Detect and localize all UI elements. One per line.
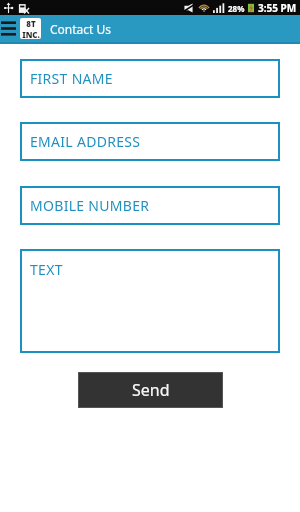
button[interactable]: 8T INC. home <box>20 18 41 39</box>
staticText: FIRST NAME <box>30 69 113 88</box>
button[interactable]: FIRST NAME <box>20 59 280 98</box>
staticText: 3:55 PM <box>258 1 297 15</box>
staticText: 8T <box>26 18 36 29</box>
staticText: Send <box>132 379 170 401</box>
staticText: Contact Us <box>50 21 112 37</box>
staticText: TEXT <box>30 260 63 279</box>
staticText: INC. <box>22 29 40 39</box>
button[interactable]: MOBILE NUMBER <box>20 186 280 225</box>
button[interactable]: Open navigation menu <box>0 15 17 42</box>
button[interactable]: EMAIL ADDRESS <box>20 122 280 161</box>
staticText: MOBILE NUMBER <box>30 196 150 215</box>
staticText: 28% <box>228 3 245 14</box>
staticText: EMAIL ADDRESS <box>30 132 141 151</box>
button[interactable]: TEXT <box>20 249 280 353</box>
button[interactable]: Send <box>78 372 223 408</box>
